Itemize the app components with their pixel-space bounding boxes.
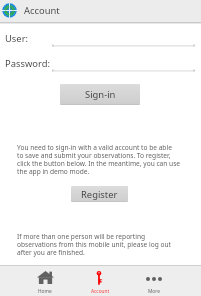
staticText: Account (91, 288, 110, 295)
button[interactable]: More (128, 266, 180, 296)
other: Home (37, 271, 54, 284)
button[interactable]: Register (71, 186, 128, 202)
staticText: User: (5, 32, 29, 45)
staticText: Register (81, 188, 118, 201)
button[interactable] (52, 33, 195, 47)
other: Account (92, 271, 109, 285)
button[interactable]: Account (74, 266, 126, 296)
button[interactable] (52, 58, 195, 72)
staticText: Password: (5, 57, 50, 70)
staticText: Sign-in (85, 88, 116, 101)
button[interactable]: Sign-in (60, 84, 140, 105)
staticText: You need to sign-in with a valid account… (17, 143, 181, 176)
button[interactable]: Home (19, 266, 71, 296)
staticText: Home (38, 288, 52, 295)
other: More (146, 277, 162, 281)
staticText: More (148, 288, 160, 295)
staticText: Account (24, 4, 60, 17)
staticText: If more than one person will be reportin… (17, 232, 181, 257)
